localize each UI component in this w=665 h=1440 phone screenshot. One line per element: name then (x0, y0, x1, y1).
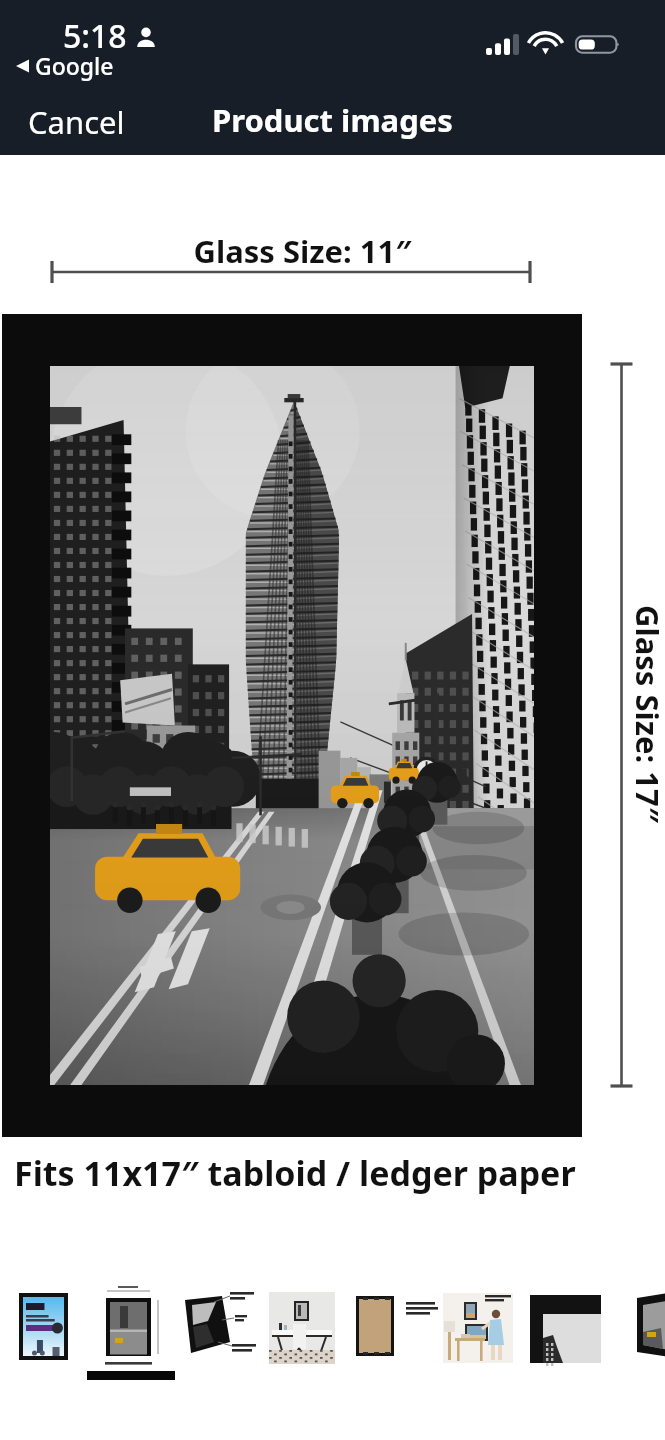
staticText: Product images (212, 99, 453, 141)
staticText: Google (35, 50, 114, 81)
button[interactable]: Product image (2, 314, 582, 1137)
staticText: Fits 11x17″ tabloid / ledger paper (14, 1150, 576, 1196)
button[interactable]: Product image 3 (174, 1280, 261, 1380)
button[interactable]: Product image 4 (261, 1280, 348, 1380)
staticText: Glass Size: 11″ (0, 230, 635, 272)
button[interactable]: Cancel (12, 92, 141, 152)
staticText: Cancel (28, 101, 125, 143)
staticText: Glass Size: 17″ (629, 605, 665, 824)
button[interactable]: Product image 8 (609, 1280, 665, 1380)
button[interactable]: Product image 2 (87, 1280, 174, 1380)
button[interactable]: Product image 5 (348, 1280, 435, 1380)
button[interactable]: Product image 6 (435, 1280, 522, 1380)
button[interactable]: Product image 7 (522, 1280, 609, 1380)
button[interactable]: Product image 1 (0, 1280, 87, 1380)
staticText: 5:18 (63, 14, 127, 58)
button[interactable]: Back to Google (16, 50, 114, 81)
